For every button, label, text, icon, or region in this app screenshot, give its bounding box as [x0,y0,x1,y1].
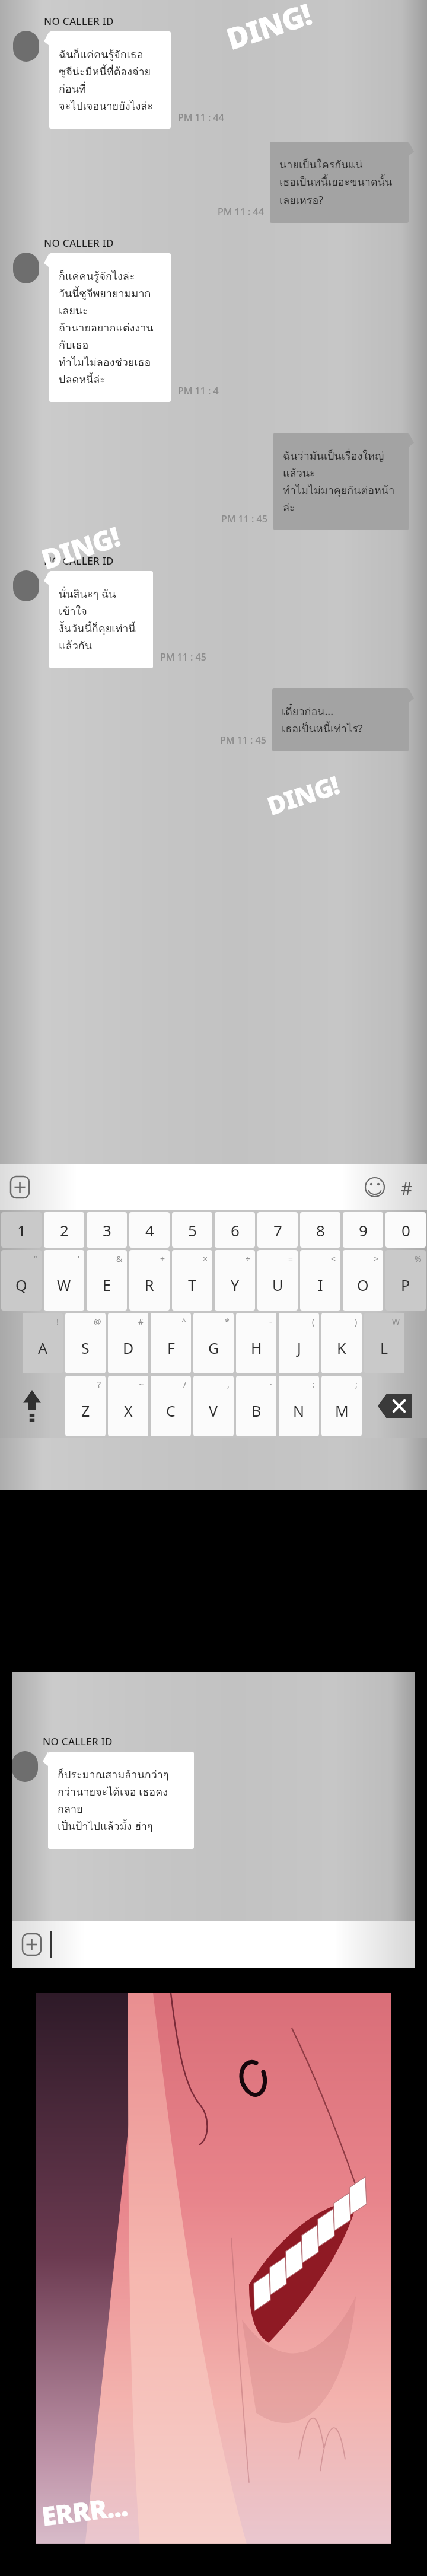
button[interactable]: * [193,1313,234,1373]
staticText: 6 [231,1220,240,1241]
staticText: S [81,1338,90,1358]
button[interactable]: = [257,1250,298,1311]
button[interactable]: , [193,1376,234,1436]
staticText: ? [97,1379,101,1390]
staticText: นายเป็นใครกันแน่ [279,156,363,173]
button[interactable]: 6 [215,1212,255,1248]
staticText: 1 [17,1220,26,1241]
button[interactable]: 7 [257,1212,298,1248]
staticText: * [225,1316,230,1327]
button[interactable]: + [129,1250,170,1311]
button[interactable]: เดี๋ยวก่อน... [272,688,414,751]
button[interactable]: ( [279,1313,319,1373]
staticText: PM 11 : 44 [218,205,264,218]
button[interactable]: Shift [1,1376,63,1436]
button[interactable]: Emoji [363,1175,387,1199]
staticText: L [380,1338,388,1358]
button[interactable]: < [300,1250,340,1311]
button[interactable]: Profile photo [13,253,39,283]
button[interactable]: 5 [172,1212,212,1248]
staticText: เป็นป้าไปแล้วมั้ง ฮ่าๆ [58,1818,153,1835]
button[interactable]: : [279,1376,319,1436]
staticText: : [313,1379,315,1390]
button[interactable]: > [343,1250,383,1311]
button[interactable]: 4 [129,1212,170,1248]
staticText: เธอเป็นหนี้เยอะขนาดนั้นเลยเหรอ? [279,173,399,209]
staticText: # [138,1316,144,1327]
staticText: DING! [37,518,124,578]
staticText: ^ [181,1316,187,1327]
staticText: @ [94,1316,101,1327]
staticText: A [38,1338,47,1358]
button[interactable]: " [1,1250,42,1311]
button[interactable]: ฉันว่ามันเป็นเรื่องใหญ่แล้วนะ [273,433,414,530]
staticText: W [392,1316,400,1327]
button[interactable]: ÷ [215,1250,255,1311]
button[interactable]: / [151,1376,191,1436]
button[interactable]: # [108,1313,148,1373]
staticText: ! [56,1316,59,1327]
staticText: # [401,1177,413,1198]
staticText: DING! [221,0,316,59]
button[interactable]: ! [23,1313,63,1373]
staticText: U [272,1275,283,1295]
staticText: ERRR... [40,2488,129,2534]
button[interactable]: 1 [1,1212,42,1248]
button[interactable]: นายเป็นใครกันแน่ [270,142,414,223]
button[interactable]: นั่นสินะๆ ฉันเข้าใจ [44,571,153,668]
button[interactable]: 0 [385,1212,426,1248]
button[interactable]: Profile photo [13,570,39,601]
button[interactable]: Add attachment [9,1175,30,1199]
button[interactable]: × [172,1250,212,1311]
button[interactable]: ~ [108,1376,148,1436]
staticText: " [34,1253,37,1264]
button[interactable]: ) [321,1313,362,1373]
staticText: H [251,1338,262,1358]
staticText: ถ้านายอยากแต่งงานกับเธอ [59,319,161,353]
button[interactable]: 8 [300,1212,340,1248]
button[interactable]: ? [65,1376,106,1436]
button[interactable]: ก็ประมาณสามล้านกว่าๆ [43,1752,194,1849]
staticText: ซูจีน่ะมีหนี้ที่ต้องจ่ายก่อนที่ [59,63,161,97]
staticText: ทำไมไม่ลองช่วยเธอปลดหนี้ล่ะ [59,353,161,388]
button[interactable]: Profile photo [12,1751,38,1782]
staticText: % [415,1253,422,1264]
staticText: PM 11 : 45 [160,651,206,664]
staticText: W [57,1275,71,1295]
staticText: 7 [273,1220,282,1241]
button[interactable]: Profile photo [13,31,39,62]
staticText: ( [312,1316,315,1327]
staticText: I [318,1275,323,1295]
button[interactable]: - [236,1313,276,1373]
button[interactable]: 9 [343,1212,383,1248]
staticText: > [374,1253,379,1264]
button[interactable]: Hashtag [396,1177,418,1198]
staticText: P [401,1275,410,1295]
staticText: G [208,1338,219,1358]
button[interactable]: Add attachment [21,1933,42,1956]
button[interactable]: W [364,1313,404,1373]
button[interactable]: ' [44,1250,84,1311]
staticText: C [166,1401,176,1421]
button[interactable]: ; [321,1376,362,1436]
button[interactable]: 3 [87,1212,127,1248]
button[interactable]: ^ [151,1313,191,1373]
staticText: ) [355,1316,358,1327]
button[interactable]: & [87,1250,127,1311]
staticText: ทำไมไม่มาคุยกันต่อหน้าล่ะ [283,482,399,516]
button[interactable]: % [385,1250,426,1311]
staticText: F [167,1338,175,1358]
staticText: + [160,1253,165,1264]
button[interactable]: · [236,1376,276,1436]
staticText: ก็ประมาณสามล้านกว่าๆ [58,1766,169,1783]
button[interactable]: ฉันก็แค่คนรู้จักเธอ [44,31,171,129]
staticText: < [331,1253,336,1264]
button[interactable]: 2 [44,1212,84,1248]
staticText: 9 [359,1220,368,1241]
staticText: T [188,1275,196,1295]
staticText: & [116,1253,123,1264]
staticText: ฉันก็แค่คนรู้จักเธอ [59,46,144,63]
button[interactable]: @ [65,1313,106,1373]
button[interactable]: Delete [364,1376,426,1436]
button[interactable]: ก็แค่คนรู้จักไงล่ะ [44,253,171,402]
